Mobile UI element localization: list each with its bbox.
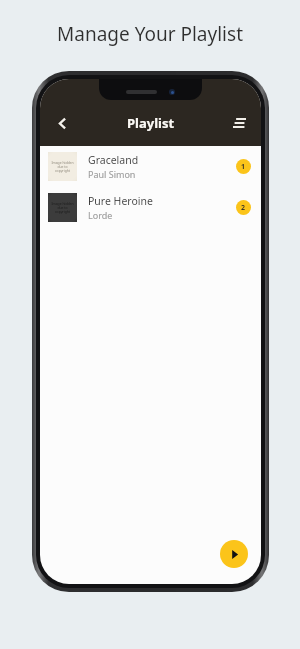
- button[interactable]: Image hidden due to copyright: [40, 146, 261, 187]
- button[interactable]: Back: [40, 100, 84, 146]
- staticText: Playlist: [127, 114, 175, 132]
- button[interactable]: Image hidden due to copyright: [40, 187, 261, 228]
- staticText: Lorde: [88, 209, 113, 221]
- staticText: 2: [241, 203, 246, 213]
- button[interactable]: Sort: [217, 100, 261, 146]
- staticText: Image hidden due to copyright: [51, 160, 74, 173]
- staticText: 1: [241, 162, 246, 172]
- staticText: Pure Heroine: [88, 194, 153, 208]
- button[interactable]: Play: [220, 540, 248, 568]
- staticText: Graceland: [88, 153, 139, 167]
- staticText: Image hidden due to copyright: [51, 201, 74, 214]
- staticText: Manage Your Playlist: [57, 21, 243, 47]
- staticText: Paul Simon: [88, 168, 136, 180]
